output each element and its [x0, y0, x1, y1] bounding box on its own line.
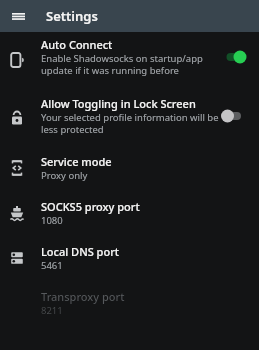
staticText: Auto Connect	[41, 37, 113, 52]
button[interactable]: Service mode	[0, 149, 259, 194]
staticText: Your selected profile information will b…	[41, 111, 219, 136]
staticText: Service mode	[41, 154, 112, 169]
button[interactable]: Transproxy port	[0, 284, 259, 329]
staticText: Proxy only	[41, 169, 88, 182]
staticText: 1080	[41, 214, 63, 227]
staticText: Settings	[46, 7, 98, 25]
staticText: Transproxy port	[41, 289, 125, 304]
button[interactable]: Local DNS port	[0, 239, 259, 284]
staticText: Enable Shadowsocks on startup/app update…	[41, 52, 203, 77]
button[interactable]: Auto Connect	[0, 32, 259, 91]
button[interactable]: SOCKS5 proxy port	[0, 194, 259, 239]
staticText: 5461	[41, 259, 63, 272]
staticText: Allow Toggling in Lock Screen	[41, 96, 196, 111]
staticText: 8211	[41, 304, 63, 317]
button[interactable]	[0, 0, 33, 32]
staticText: SOCKS5 proxy port	[41, 199, 140, 214]
button[interactable]: Allow Toggling in Lock Screen	[0, 91, 259, 149]
staticText: Local DNS port	[41, 244, 120, 259]
